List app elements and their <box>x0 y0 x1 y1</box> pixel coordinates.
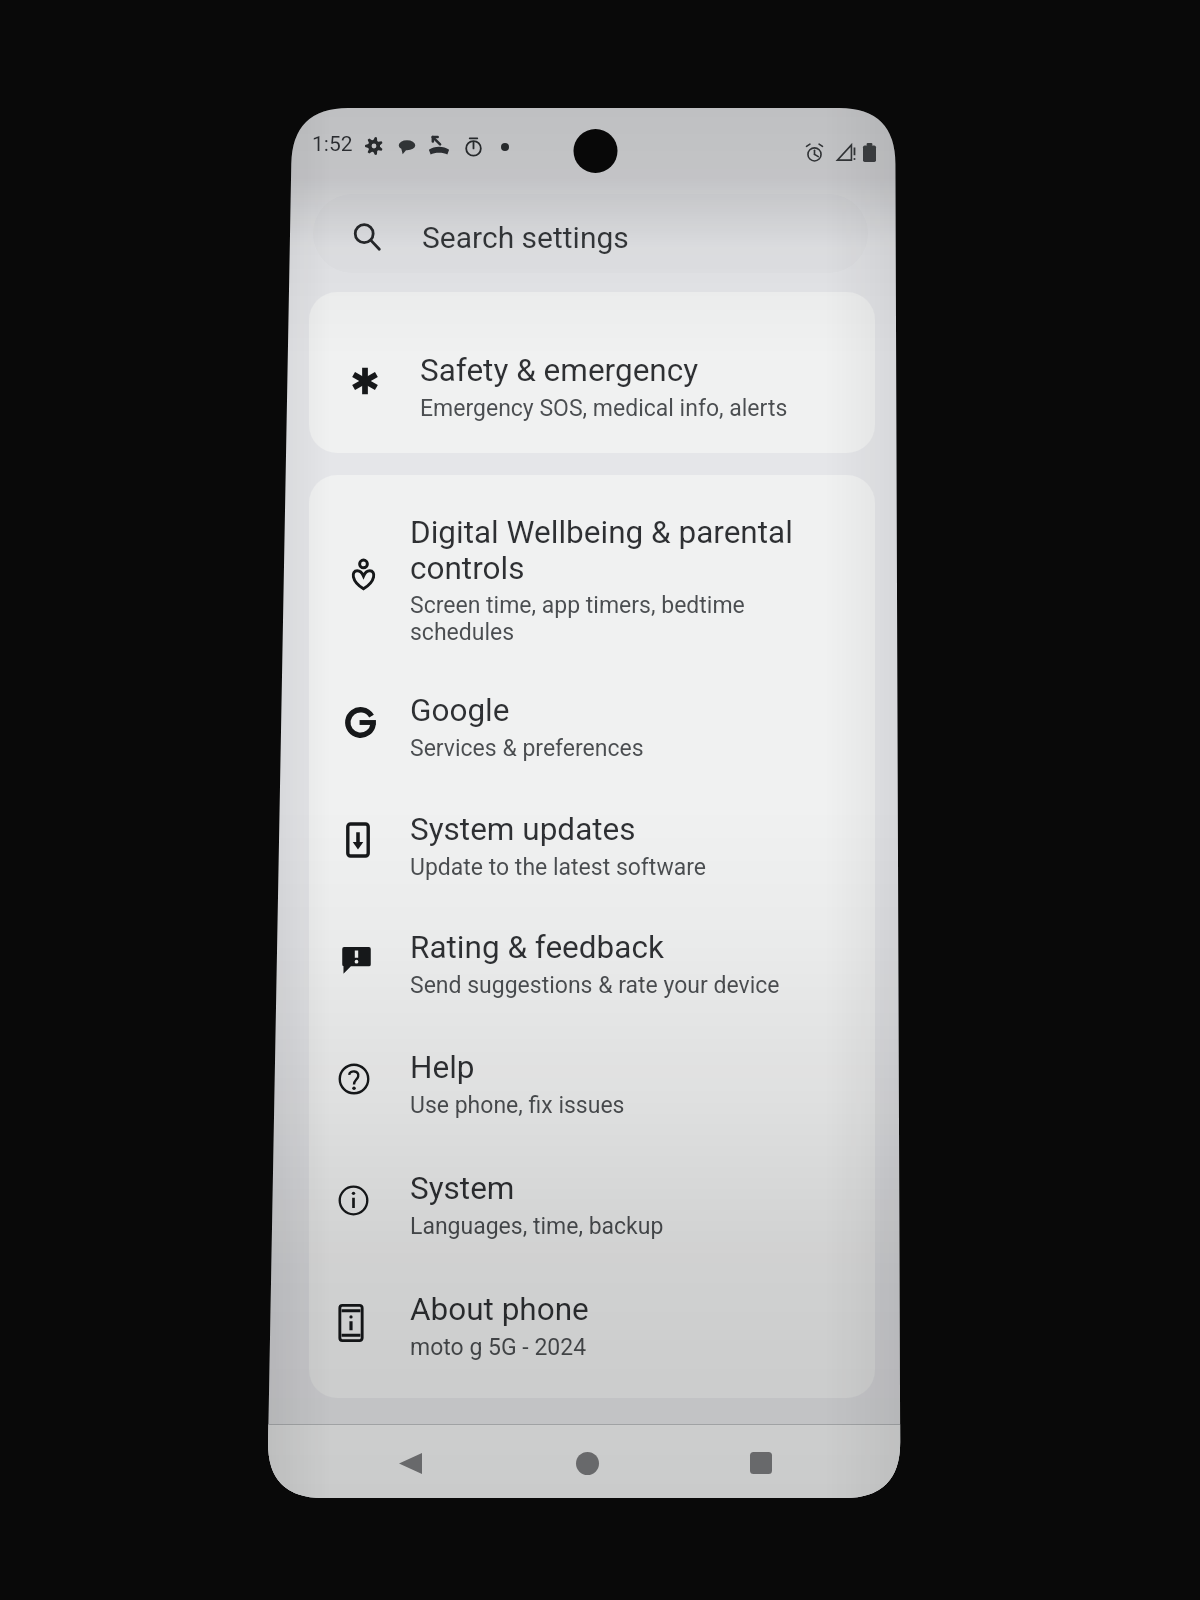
staticText: Use phone, fix issues <box>410 1092 625 1119</box>
staticText: System updates <box>410 811 636 848</box>
button[interactable]: Home <box>557 1433 617 1493</box>
button[interactable]: Assistant, gestures, pay <box>309 292 875 453</box>
button[interactable]: Search settings <box>313 194 868 273</box>
button[interactable]: System <box>410 1170 840 1240</box>
staticText: Update to the latest software <box>410 854 706 881</box>
staticText: Google <box>410 692 510 729</box>
button[interactable]: Help <box>410 1049 840 1119</box>
staticText: Rating & feedback <box>410 929 664 966</box>
staticText: Digital Wellbeing & parental controls <box>410 514 802 586</box>
staticText: Search settings <box>422 220 629 255</box>
staticText: Screen time, app timers, bedtime schedul… <box>410 592 802 645</box>
button[interactable]: System updates <box>410 811 840 881</box>
staticText: Languages, time, backup <box>410 1213 664 1240</box>
staticText: About phone <box>410 1291 589 1328</box>
staticText: Help <box>410 1049 475 1086</box>
staticText: Send suggestions & rate your device <box>410 972 780 999</box>
staticText: 1:52 <box>312 132 353 157</box>
button[interactable]: About phone <box>410 1291 840 1361</box>
staticText: Safety & emergency <box>420 352 699 389</box>
button[interactable]: Back <box>380 1433 440 1493</box>
staticText: Services & preferences <box>410 735 644 762</box>
button[interactable]: Rating & feedback <box>410 929 840 999</box>
button[interactable]: Digital Wellbeing & parental controls <box>410 514 802 645</box>
staticText: Emergency SOS, medical info, alerts <box>420 395 788 422</box>
staticText: System <box>410 1170 515 1207</box>
button[interactable]: Recent apps <box>731 1433 791 1493</box>
staticText: moto g 5G - 2024 <box>410 1334 587 1361</box>
button[interactable]: Google <box>410 692 840 762</box>
button[interactable]: Safety & emergency <box>420 352 850 422</box>
